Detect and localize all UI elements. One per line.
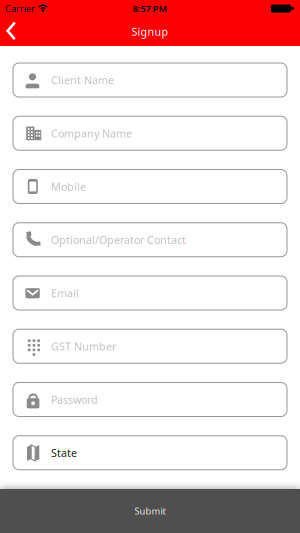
staticText: Client Name: [51, 73, 114, 87]
staticText: Email: [51, 286, 79, 300]
staticText: State: [51, 446, 77, 460]
button[interactable]: Email: [13, 276, 287, 310]
button[interactable]: Submit: [0, 489, 300, 533]
staticText: GST Number: [51, 339, 116, 353]
staticText: Optional/Operator Contact: [51, 233, 186, 247]
button[interactable]: State: [13, 436, 287, 470]
button[interactable]: GST Number: [13, 329, 287, 363]
button[interactable]: Optional/Operator Contact: [13, 223, 287, 257]
button[interactable]: Back: [0, 17, 26, 46]
staticText: Mobile: [51, 179, 86, 194]
staticText: 8:57 PM: [132, 2, 167, 15]
staticText: Company Name: [51, 126, 132, 140]
staticText: Submit: [134, 505, 165, 517]
button[interactable]: Mobile: [13, 169, 287, 203]
button[interactable]: Client Name: [13, 63, 287, 97]
staticText: Signup: [131, 24, 168, 39]
button[interactable]: Company Name: [13, 116, 287, 150]
staticText: Carrier: [5, 2, 35, 15]
staticText: Password: [51, 392, 98, 407]
button[interactable]: Password: [13, 382, 287, 416]
